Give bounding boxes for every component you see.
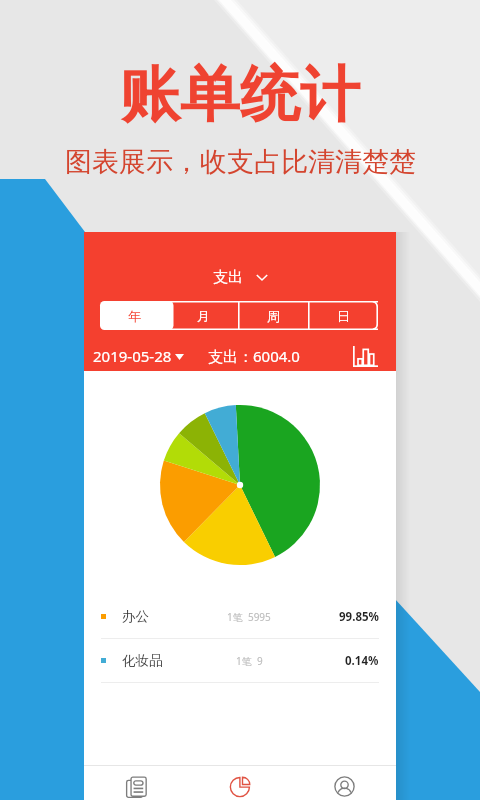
staticText: 化妆品 bbox=[122, 652, 163, 669]
button[interactable]: 日 bbox=[308, 301, 378, 330]
button[interactable]: 支出 bbox=[84, 268, 396, 287]
staticText: 0.14% bbox=[345, 653, 379, 669]
button[interactable]: 化妆品 bbox=[84, 639, 396, 682]
staticText: 1笔 9 bbox=[236, 654, 263, 668]
staticText: 1笔 5995 bbox=[227, 610, 271, 624]
staticText: 2019-05-28 bbox=[93, 346, 172, 366]
staticText: 账单统计 bbox=[120, 57, 360, 133]
staticText: 支出：6004.0 bbox=[208, 346, 300, 366]
button[interactable]: 办公 bbox=[84, 595, 396, 638]
staticText: 年 bbox=[128, 308, 141, 324]
button[interactable]: 月 bbox=[169, 301, 238, 330]
button[interactable]: 年 bbox=[100, 301, 169, 330]
button[interactable]: 个人中心 bbox=[292, 766, 396, 800]
staticText: 周 bbox=[267, 308, 280, 324]
staticText: 月 bbox=[197, 308, 210, 324]
staticText: 支出 bbox=[213, 268, 243, 287]
button[interactable]: 2019-05-28 bbox=[93, 346, 184, 366]
staticText: 日 bbox=[337, 308, 350, 324]
staticText: 图表展示，收支占比清清楚楚 bbox=[65, 145, 416, 179]
staticText: 99.85% bbox=[339, 609, 379, 625]
button[interactable]: 账单 bbox=[84, 766, 188, 800]
button[interactable]: 统计 bbox=[188, 766, 292, 800]
button[interactable]: Bar chart bbox=[352, 343, 378, 369]
staticText: 办公 bbox=[122, 608, 149, 625]
button[interactable]: 周 bbox=[238, 301, 308, 330]
